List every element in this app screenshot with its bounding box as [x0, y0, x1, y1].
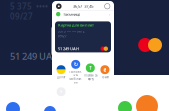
- button[interactable]: ↻: [68, 60, 83, 84]
- button[interactable]: Support: [105, 4, 110, 9]
- button[interactable]: Profile: [56, 3, 62, 9]
- staticText: 9:41: [56, 0, 63, 2]
- staticText: Таємниця: [63, 11, 80, 17]
- staticText: ›: [109, 11, 110, 17]
- staticText: 5 375 ••••: [10, 1, 48, 12]
- staticText: ↑: [88, 65, 92, 71]
- staticText: ₴: [103, 66, 106, 73]
- staticText: ↻: [74, 61, 78, 67]
- staticText: 5375 •••• •••• 0412: [58, 30, 85, 33]
- staticText: 51 249 UAH: [10, 50, 59, 62]
- staticText: 36,57: [73, 4, 82, 9]
- button[interactable]: ₴: [98, 65, 112, 79]
- button[interactable]: ↑: [83, 63, 98, 81]
- staticText: Томат: [101, 75, 108, 79]
- button[interactable]: Таємниця: [52, 10, 114, 18]
- staticText: 37,45: [84, 4, 93, 9]
- button[interactable]: Донат: [54, 65, 68, 79]
- staticText: Картка для виплат: [58, 22, 94, 28]
- staticText: Донат: [57, 75, 65, 79]
- staticText: Платежі за карту: [84, 74, 97, 81]
- button[interactable]: +: [54, 87, 68, 101]
- staticText: 09/27: [10, 11, 33, 22]
- staticText: 09/27: [58, 34, 67, 38]
- staticText: 51 249 UAH: [58, 46, 79, 51]
- staticText: Поповнити мобільний: [69, 70, 82, 84]
- staticText: +: [60, 88, 63, 95]
